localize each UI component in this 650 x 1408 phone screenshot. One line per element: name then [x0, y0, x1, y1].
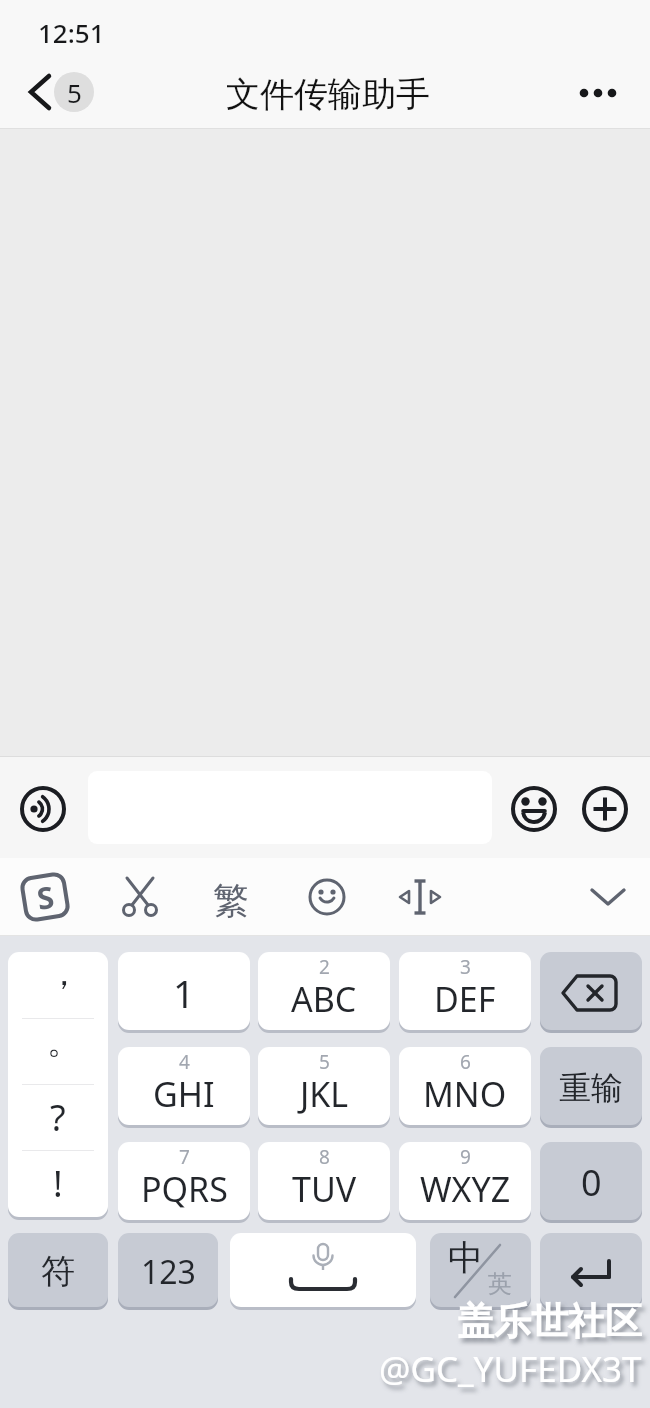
staticText: PQRS: [141, 1166, 228, 1212]
button[interactable]: 5: [24, 68, 94, 116]
staticText: MNO: [423, 1071, 507, 1117]
staticText: 12:51: [38, 15, 105, 50]
button[interactable]: 符: [8, 1233, 108, 1310]
staticText: 5: [67, 75, 82, 110]
staticText: 3: [460, 954, 471, 980]
button[interactable]: [540, 952, 642, 1033]
button[interactable]: [20, 786, 66, 832]
staticText: 4: [179, 1049, 190, 1075]
button[interactable]: ，: [8, 952, 108, 1220]
staticText: TUV: [292, 1166, 357, 1212]
staticText: 8: [319, 1144, 330, 1170]
staticText: S: [34, 876, 57, 919]
button[interactable]: [574, 72, 622, 112]
staticText: 2: [319, 954, 330, 980]
button[interactable]: 4: [118, 1047, 250, 1128]
staticText: !: [53, 1159, 63, 1208]
button[interactable]: [582, 786, 628, 832]
button[interactable]: 8: [258, 1142, 390, 1223]
button[interactable]: [586, 882, 630, 912]
button[interactable]: [396, 875, 444, 923]
button[interactable]: [511, 786, 557, 832]
staticText: 符: [41, 1250, 75, 1293]
staticText: 中: [448, 1236, 483, 1280]
staticText: 123: [141, 1250, 196, 1294]
button[interactable]: S: [19, 871, 71, 923]
staticText: 文件传输助手: [226, 73, 430, 116]
button[interactable]: 7: [118, 1142, 250, 1223]
button[interactable]: 6: [399, 1047, 531, 1128]
staticText: 7: [179, 1144, 190, 1170]
staticText: 盖乐世社区: [457, 1298, 642, 1345]
staticText: 9: [460, 1144, 471, 1170]
staticText: JKL: [300, 1071, 349, 1117]
staticText: @GC_YUFEDX3T: [379, 1345, 642, 1393]
staticText: ABC: [291, 976, 357, 1022]
button[interactable]: 3: [399, 952, 531, 1033]
staticText: ?: [50, 1093, 66, 1142]
staticText: 重输: [559, 1068, 623, 1108]
staticText: GHI: [153, 1071, 215, 1117]
staticText: WXYZ: [420, 1166, 511, 1212]
button[interactable]: 重输: [540, 1047, 642, 1128]
button[interactable]: [308, 878, 346, 916]
button[interactable]: [230, 1233, 416, 1310]
staticText: ，: [47, 952, 81, 995]
button[interactable]: [540, 1233, 642, 1310]
staticText: 英: [488, 1269, 512, 1299]
button[interactable]: 中: [430, 1233, 531, 1310]
button[interactable]: 9: [399, 1142, 531, 1223]
staticText: 1: [173, 967, 195, 1019]
staticText: 6: [460, 1049, 471, 1075]
button[interactable]: 繁: [213, 878, 249, 923]
staticText: DEF: [434, 976, 496, 1022]
staticText: 。: [47, 1020, 81, 1063]
button[interactable]: [118, 875, 162, 919]
button[interactable]: 5: [258, 1047, 390, 1128]
button[interactable]: 0: [540, 1142, 642, 1223]
button[interactable]: 123: [118, 1233, 218, 1310]
staticText: 5: [319, 1049, 330, 1075]
staticText: 0: [581, 1158, 602, 1207]
button[interactable]: 2: [258, 952, 390, 1033]
button[interactable]: 1: [118, 952, 250, 1033]
